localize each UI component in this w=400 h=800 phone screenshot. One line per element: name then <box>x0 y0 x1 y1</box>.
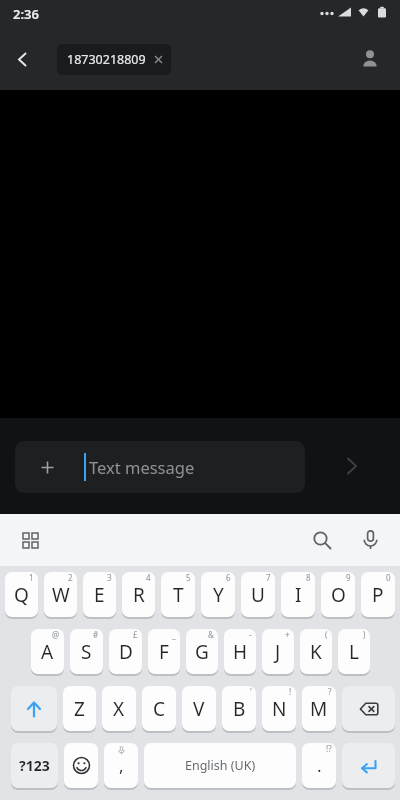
staticText: A <box>41 639 54 665</box>
staticText: Y <box>213 582 224 608</box>
button[interactable] <box>342 686 395 731</box>
staticText: U <box>251 582 265 608</box>
button[interactable]: D <box>109 629 142 674</box>
staticText: H <box>233 639 248 665</box>
staticText: 1 <box>29 572 34 583</box>
button[interactable]: X <box>102 686 136 731</box>
staticText: 3 <box>107 572 112 583</box>
button[interactable]: H <box>224 629 256 674</box>
staticText: _ <box>172 629 176 640</box>
button[interactable]: M <box>302 686 336 731</box>
button[interactable]: Z <box>63 686 96 731</box>
button[interactable]: , <box>104 743 138 788</box>
staticText: D <box>119 639 133 665</box>
staticText: X <box>113 696 125 722</box>
staticText: 2:36 <box>13 5 39 23</box>
staticText: ! <box>289 686 292 697</box>
staticText: C <box>153 696 166 722</box>
staticText: 2 <box>68 572 73 583</box>
staticText: 9 <box>346 572 351 583</box>
staticText: J <box>275 639 281 665</box>
staticText: 4 <box>146 572 151 583</box>
button[interactable]: Text message <box>15 441 305 493</box>
staticText: & <box>208 629 214 640</box>
staticText: Text message <box>89 456 195 478</box>
button[interactable]: P <box>361 572 395 617</box>
staticText: 0 <box>386 572 391 583</box>
staticText: P <box>372 582 384 608</box>
staticText: English (UK) <box>185 757 256 774</box>
staticText: !? <box>326 743 332 754</box>
button[interactable]: O <box>321 572 355 617</box>
button[interactable] <box>12 522 48 558</box>
button[interactable]: E <box>83 572 116 617</box>
staticText: K <box>310 639 322 665</box>
button[interactable] <box>330 444 374 488</box>
staticText: ? <box>328 686 332 697</box>
staticText: 8 <box>306 572 311 583</box>
button[interactable]: V <box>182 686 216 731</box>
button[interactable]: N <box>262 686 296 731</box>
staticText: E <box>94 582 105 608</box>
staticText: S <box>81 639 92 665</box>
button[interactable]: English (UK) <box>144 743 296 788</box>
staticText: G <box>195 639 209 665</box>
button[interactable]: L <box>338 629 370 674</box>
staticText: B <box>233 696 246 722</box>
staticText: 7 <box>266 572 271 583</box>
button[interactable] <box>8 45 36 73</box>
staticText: N <box>272 696 287 722</box>
staticText: R <box>133 582 145 608</box>
staticText: ( <box>325 629 328 640</box>
staticText: 5 <box>186 572 191 583</box>
button[interactable]: S <box>70 629 103 674</box>
button[interactable] <box>357 46 383 72</box>
staticText: F <box>159 639 169 665</box>
button[interactable] <box>351 521 389 559</box>
button[interactable]: C <box>142 686 176 731</box>
button[interactable]: 18730218809 <box>57 44 171 75</box>
button[interactable]: W <box>44 572 77 617</box>
button[interactable]: R <box>122 572 155 617</box>
button[interactable] <box>11 686 57 731</box>
button[interactable] <box>303 521 341 559</box>
staticText: Z <box>74 696 85 722</box>
staticText: # <box>93 629 99 640</box>
staticText: + <box>285 629 290 640</box>
button[interactable] <box>64 743 98 788</box>
staticText: L <box>349 639 359 665</box>
staticText: M <box>310 696 328 722</box>
button[interactable]: U <box>241 572 275 617</box>
staticText: Q <box>14 582 29 608</box>
button[interactable]: G <box>186 629 218 674</box>
button[interactable]: J <box>262 629 294 674</box>
button[interactable]: K <box>300 629 332 674</box>
staticText: V <box>193 696 205 722</box>
staticText: 6 <box>226 572 231 583</box>
button[interactable]: I <box>281 572 315 617</box>
staticText: I <box>295 582 302 608</box>
button[interactable]: Q <box>5 572 38 617</box>
staticText: T <box>173 582 184 608</box>
button[interactable]: . <box>302 743 336 788</box>
staticText: W <box>52 582 70 608</box>
staticText: O <box>331 582 346 608</box>
button[interactable]: A <box>31 629 64 674</box>
button[interactable]: Y <box>201 572 235 617</box>
staticText: 18730218809 <box>67 51 146 68</box>
staticText: @ <box>52 629 60 640</box>
staticText: - <box>249 629 252 640</box>
staticText: , <box>119 754 124 777</box>
button[interactable]: T <box>161 572 195 617</box>
staticText: ?123 <box>19 756 50 775</box>
staticText: . <box>317 754 322 777</box>
staticText: ) <box>363 629 366 640</box>
staticText: £ <box>133 629 138 640</box>
button[interactable]: B <box>222 686 256 731</box>
button[interactable]: ?123 <box>11 743 58 788</box>
staticText: ' <box>250 686 252 697</box>
button[interactable]: F <box>148 629 180 674</box>
button[interactable] <box>342 743 395 788</box>
